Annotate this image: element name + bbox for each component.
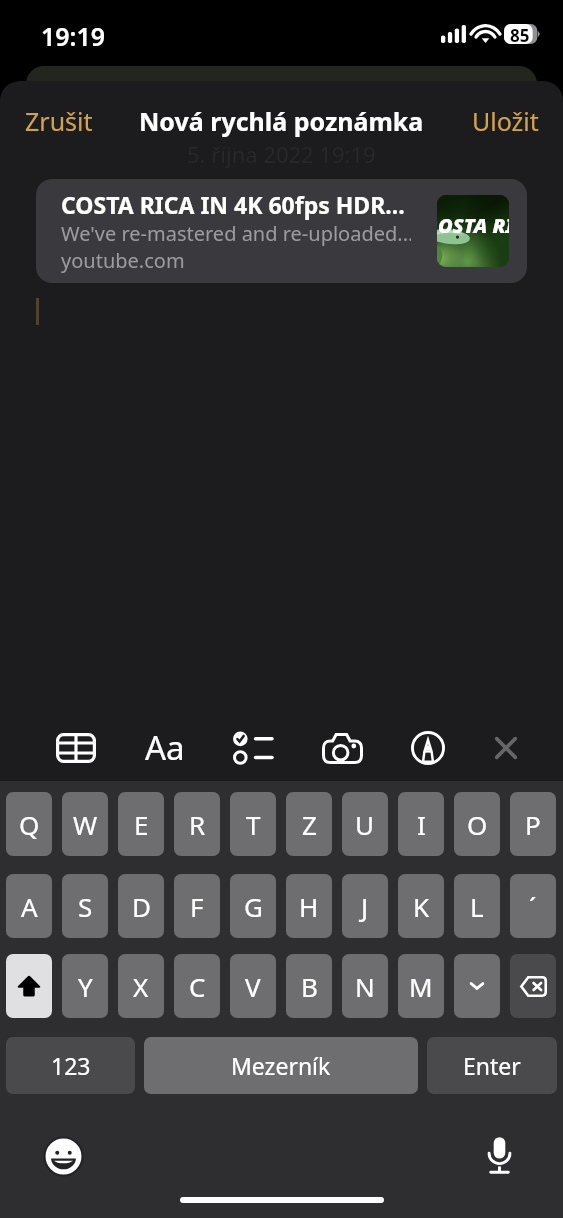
- button[interactable]: W: [62, 792, 108, 856]
- staticText: COSTA RICA IN 4K 60fps HDR...: [61, 189, 405, 220]
- staticText: R: [189, 807, 206, 842]
- button[interactable]: T: [230, 792, 276, 856]
- button[interactable]: COSTA RICA IN 4K 60fps HDR...: [36, 179, 527, 283]
- button[interactable]: H: [286, 874, 332, 938]
- staticText: Uložit: [472, 104, 539, 138]
- button[interactable]: G: [230, 874, 276, 938]
- button[interactable]: Q: [6, 792, 52, 856]
- staticText: U: [355, 807, 375, 842]
- button[interactable]: B: [286, 954, 332, 1018]
- staticText: S: [78, 889, 93, 924]
- button[interactable]: Shift: [6, 954, 52, 1018]
- staticText: H: [299, 889, 319, 924]
- button[interactable]: Camera: [314, 716, 370, 780]
- staticText: V: [245, 969, 261, 1004]
- staticText: Y: [78, 969, 93, 1004]
- staticText: Nová rychlá poznámka: [139, 104, 424, 138]
- staticText: X: [133, 969, 149, 1004]
- staticText: M: [409, 969, 433, 1004]
- button[interactable]: R: [174, 792, 220, 856]
- staticText: C: [189, 969, 206, 1004]
- button[interactable]: F: [174, 874, 220, 938]
- button[interactable]: Close: [478, 716, 534, 780]
- button[interactable]: E: [118, 792, 164, 856]
- button[interactable]: Y: [62, 954, 108, 1018]
- staticText: 19:19: [41, 19, 106, 53]
- button[interactable]: L: [454, 874, 500, 938]
- staticText: K: [413, 889, 430, 924]
- button[interactable]: M: [398, 954, 444, 1018]
- staticText: O: [467, 807, 488, 842]
- button[interactable]: I: [398, 792, 444, 856]
- staticText: Aa: [145, 725, 185, 770]
- staticText: N: [355, 969, 375, 1004]
- button[interactable]: Text format: [137, 716, 193, 780]
- staticText: I: [417, 807, 426, 842]
- staticText: 5. října 2022 19:19: [187, 139, 376, 169]
- button[interactable]: V: [230, 954, 276, 1018]
- button[interactable]: X: [118, 954, 164, 1018]
- staticText: We've re-mastered and re-uploaded...: [61, 220, 411, 247]
- button[interactable]: Markup: [400, 716, 456, 780]
- staticText: E: [134, 807, 149, 842]
- button[interactable]: K: [398, 874, 444, 938]
- button[interactable]: N: [342, 954, 388, 1018]
- button[interactable]: C: [174, 954, 220, 1018]
- button[interactable]: More symbols: [454, 954, 500, 1018]
- button[interactable]: Uložit: [454, 98, 563, 144]
- staticText: 85: [510, 24, 530, 44]
- staticText: B: [301, 969, 318, 1004]
- button[interactable]: Mezerník: [144, 1037, 418, 1094]
- staticText: Z: [302, 807, 317, 842]
- button[interactable]: U: [342, 792, 388, 856]
- button[interactable]: S: [62, 874, 108, 938]
- staticText: F: [190, 889, 204, 924]
- staticText: OSTA RICA: [438, 212, 509, 239]
- button[interactable]: Zrušit: [0, 98, 111, 144]
- button[interactable]: ´: [510, 874, 556, 938]
- button[interactable]: D: [118, 874, 164, 938]
- button[interactable]: Table: [48, 716, 104, 780]
- staticText: J: [361, 889, 369, 924]
- staticText: T: [246, 807, 261, 842]
- button[interactable]: Dictate: [477, 1133, 521, 1177]
- staticText: Enter: [463, 1050, 521, 1081]
- staticText: L: [470, 889, 484, 924]
- button[interactable]: Enter: [427, 1037, 557, 1094]
- staticText: P: [525, 807, 541, 842]
- button[interactable]: A: [6, 874, 52, 938]
- button[interactable]: O: [454, 792, 500, 856]
- button[interactable]: Backspace: [510, 954, 556, 1018]
- staticText: youtube.com: [61, 247, 185, 274]
- button[interactable]: J: [342, 874, 388, 938]
- staticText: W: [73, 807, 98, 842]
- button[interactable]: Emoji keyboard: [41, 1134, 85, 1178]
- staticText: Mezerník: [231, 1050, 331, 1081]
- staticText: D: [132, 889, 151, 924]
- staticText: Zrušit: [25, 104, 93, 138]
- staticText: ´: [529, 889, 537, 924]
- button[interactable]: Z: [286, 792, 332, 856]
- button[interactable]: Checklist: [224, 716, 280, 780]
- button[interactable]: 123: [6, 1037, 135, 1094]
- staticText: G: [244, 889, 263, 924]
- staticText: 123: [51, 1050, 91, 1081]
- staticText: A: [21, 889, 38, 924]
- staticText: Q: [19, 807, 40, 842]
- button[interactable]: P: [510, 792, 556, 856]
